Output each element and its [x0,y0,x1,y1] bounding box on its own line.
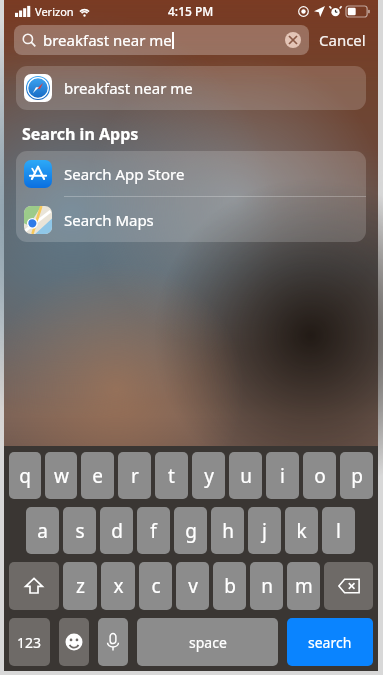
button[interactable]: a [26,507,59,554]
staticText: o [314,463,326,489]
staticText: a [37,518,48,544]
staticText: j [262,518,267,544]
staticText: g [185,518,197,544]
button[interactable]: Backspace [324,562,373,610]
button[interactable]: search [287,618,373,666]
button[interactable]: g [174,507,207,554]
staticText: x [113,573,124,599]
button[interactable]: 123 [9,618,50,666]
staticText: c [151,573,161,599]
button[interactable]: s [63,507,96,554]
button[interactable]: Clear text [285,32,301,48]
button[interactable]: u [229,452,262,499]
staticText: w [54,463,69,489]
button[interactable]: Search Maps [16,197,366,242]
staticText: Search App Store [64,164,185,184]
staticText: d [111,518,123,544]
staticText: Verizon [35,4,74,19]
staticText: u [240,463,252,489]
staticText: b [224,573,236,599]
staticText: 123 [17,633,42,652]
button[interactable]: c [139,562,172,610]
staticText: h [222,518,234,544]
button[interactable]: h [211,507,244,554]
staticText: Cancel [319,30,366,50]
button[interactable]: Cancel [309,30,368,50]
staticText: s [75,518,85,544]
button[interactable]: p [340,452,373,499]
button[interactable]: q [9,452,41,499]
staticText: space [189,633,227,652]
button[interactable]: x [101,562,135,610]
button[interactable]: space [137,618,278,666]
button[interactable]: l [322,507,355,554]
button[interactable]: y [192,452,225,499]
staticText: breakfast near me [43,30,172,50]
button[interactable]: j [248,507,281,554]
staticText: i [280,463,285,489]
button[interactable]: r [118,452,151,499]
button[interactable]: breakfast near me [14,25,309,55]
staticText: Search Maps [64,210,154,230]
button[interactable]: k [285,507,318,554]
staticText: k [296,518,307,544]
staticText: y [204,463,214,489]
staticText: e [92,463,103,489]
button[interactable]: o [303,452,336,499]
button[interactable]: b [213,562,246,610]
button[interactable]: Search in Apps [22,123,378,145]
button[interactable]: t [155,452,188,499]
button[interactable]: Emoji [59,618,89,666]
staticText: q [19,463,31,489]
button[interactable]: z [63,562,97,610]
button[interactable]: m [287,562,320,610]
staticText: z [76,573,85,599]
button[interactable]: Dictate [98,618,128,666]
button[interactable]: i [266,452,299,499]
staticText: p [351,463,363,489]
button[interactable]: v [176,562,209,610]
staticText: l [336,518,341,544]
staticText: breakfast near me [64,78,193,98]
staticText: Search in Apps [22,123,139,145]
button[interactable]: Shift [9,562,59,610]
staticText: n [261,573,273,599]
staticText: r [131,463,139,489]
button[interactable]: e [81,452,114,499]
button[interactable]: Search App Store [16,151,366,196]
staticText: m [295,573,313,599]
staticText: 4:15 PM [168,3,214,19]
button[interactable]: d [100,507,133,554]
staticText: f [150,518,157,544]
button[interactable]: breakfast near me [16,66,366,110]
staticText: t [168,463,175,489]
button[interactable]: n [250,562,283,610]
button[interactable]: w [45,452,77,499]
button[interactable]: f [137,507,170,554]
staticText: search [308,633,352,652]
staticText: v [188,573,198,599]
